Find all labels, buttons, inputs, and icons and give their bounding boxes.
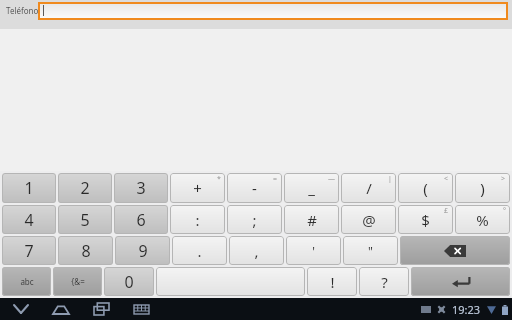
button[interactable]: Keyboard [128,298,154,320]
staticText: 9 [138,240,148,262]
staticText: # [307,210,317,230]
button[interactable]: _ [284,173,339,203]
button[interactable]: # [284,205,339,234]
staticText: . [197,241,202,261]
button[interactable]: $ [398,205,453,234]
staticText: ? [381,272,388,292]
button[interactable]: 0 [104,267,154,296]
staticText: " [368,243,373,259]
button[interactable]: 7 [2,236,56,265]
staticText: - [252,178,257,198]
button[interactable]: " [343,236,398,265]
staticText: _ [308,178,315,198]
staticText: ) [480,178,485,198]
staticText: ; [252,210,257,230]
button[interactable]: ? [359,267,409,296]
staticText: 19:23 [452,302,481,317]
staticText: abc [20,276,34,287]
button[interactable]: + [170,173,225,203]
staticText: , [254,241,259,261]
staticText: ° [503,206,506,216]
staticText: — [328,174,335,184]
staticText: 4 [24,209,34,231]
button[interactable]: 8 [58,236,113,265]
button[interactable]: ; [227,205,282,234]
staticText: 7 [24,240,34,262]
staticText: 2 [80,177,90,199]
button[interactable]: ) [455,173,510,203]
button[interactable]: ! [307,267,357,296]
button[interactable] [38,2,508,20]
button[interactable]: 4 [2,205,56,234]
staticText: / [366,178,372,198]
staticText: 8 [81,240,91,262]
staticText: ( [423,178,428,198]
button[interactable]: / [341,173,396,203]
staticText: 0 [124,271,134,293]
button[interactable]: ' [286,236,341,265]
button[interactable]: Recent apps [88,298,114,320]
button[interactable]: : [170,205,225,234]
staticText: : [195,210,200,230]
staticText: % [476,210,489,230]
button[interactable]: Home [48,298,74,320]
button[interactable]: - [227,173,282,203]
button[interactable]: Backspace [400,236,510,265]
staticText: ! [330,272,335,292]
button[interactable]: 5 [58,205,112,234]
button[interactable]: 1 [2,173,56,203]
button[interactable]: ( [398,173,453,203]
staticText: Teléfono [6,5,39,16]
staticText: * [217,174,221,184]
staticText: + [193,178,202,198]
button[interactable]: 6 [114,205,168,234]
button[interactable]: 9 [115,236,170,265]
staticText: 1 [24,177,34,199]
staticText: 3 [136,177,146,199]
staticText: 6 [136,209,146,231]
button[interactable]: 2 [58,173,112,203]
button[interactable]: @ [341,205,396,234]
button[interactable]: abc [2,267,51,296]
staticText: = [273,174,278,184]
button[interactable]: . [172,236,227,265]
button[interactable]: Space [156,267,305,296]
staticText: ' [312,243,315,259]
button[interactable]: {&= [53,267,102,296]
staticText: £ [444,206,449,216]
staticText: {&= [71,276,85,287]
button[interactable]: , [229,236,284,265]
staticText: 5 [80,209,90,231]
staticText: @ [362,210,376,230]
button[interactable]: 3 [114,173,168,203]
staticText: | [388,174,392,184]
button[interactable]: Back [8,298,34,320]
button[interactable]: Enter [411,267,510,296]
staticText: < [444,174,449,184]
staticText: $ [421,210,430,230]
button[interactable]: % [455,205,510,234]
staticText: > [501,174,506,184]
